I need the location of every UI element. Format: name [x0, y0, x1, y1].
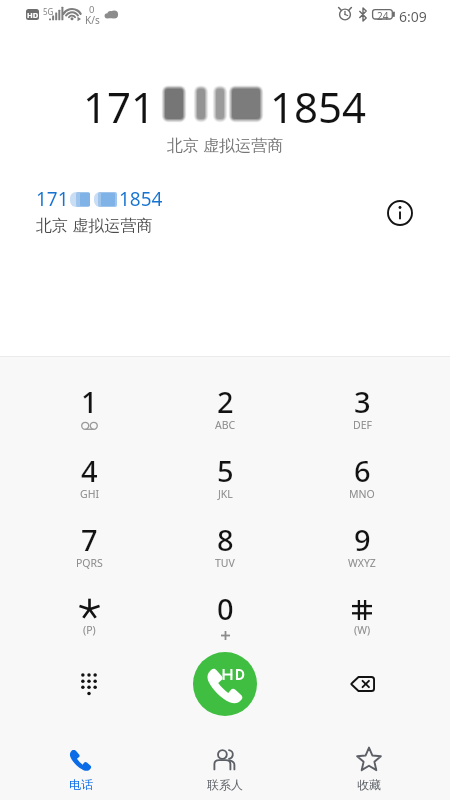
- button[interactable]: Number details: [377, 190, 422, 235]
- button[interactable]: (P): [41, 586, 137, 652]
- staticText: 171: [36, 186, 69, 212]
- staticText: 6: [354, 451, 371, 490]
- staticText: 5G: [43, 6, 54, 17]
- staticText: 7: [81, 520, 98, 559]
- staticText: 9: [354, 520, 371, 559]
- button[interactable]: 6: [314, 448, 410, 514]
- staticText: 1: [81, 382, 98, 421]
- button[interactable]: 收藏: [315, 736, 423, 798]
- staticText: 5: [217, 451, 234, 490]
- staticText: 4: [81, 451, 98, 490]
- staticText: MNO: [349, 487, 375, 501]
- button[interactable]: (W): [314, 586, 410, 652]
- staticText: 1854: [270, 78, 367, 128]
- button[interactable]: Switch keypad: [59, 654, 119, 714]
- staticText: DEF: [353, 418, 372, 432]
- staticText: 1854: [119, 186, 163, 212]
- button[interactable]: 5: [177, 448, 273, 514]
- staticText: (W): [354, 623, 371, 637]
- staticText: ABC: [215, 418, 236, 432]
- button[interactable]: Call: [193, 652, 257, 716]
- button[interactable]: 0: [177, 586, 273, 652]
- staticText: GHI: [80, 487, 99, 501]
- staticText: 0: [217, 589, 234, 628]
- staticText: TUV: [215, 556, 235, 570]
- button[interactable]: 4: [41, 448, 137, 514]
- staticText: HD: [27, 10, 39, 20]
- button[interactable]: Delete: [332, 654, 392, 714]
- button[interactable]: 电话: [27, 736, 135, 798]
- staticText: 3: [354, 382, 371, 421]
- button[interactable]: 1: [41, 379, 137, 445]
- staticText: 北京 虚拟运营商: [0, 134, 450, 156]
- staticText: 电话: [69, 777, 93, 792]
- button[interactable]: 9: [314, 517, 410, 583]
- staticText: 6:09: [399, 7, 427, 26]
- button[interactable]: 8: [177, 517, 273, 583]
- staticText: 2: [217, 382, 234, 421]
- staticText: K/s: [85, 13, 100, 27]
- staticText: JKL: [218, 487, 233, 501]
- button[interactable]: 联系人: [171, 736, 279, 798]
- staticText: 24: [377, 9, 389, 23]
- button[interactable]: 3: [314, 379, 410, 445]
- staticText: (P): [83, 623, 96, 637]
- staticText: 联系人: [207, 777, 243, 792]
- staticText: 171: [83, 78, 156, 128]
- staticText: 0: [89, 3, 95, 16]
- staticText: PQRS: [76, 556, 103, 570]
- button[interactable]: 7: [41, 517, 137, 583]
- staticText: 北京 虚拟运营商: [36, 214, 153, 236]
- staticText: 收藏: [357, 777, 381, 792]
- button[interactable]: 2: [177, 379, 273, 445]
- staticText: 8: [217, 520, 234, 559]
- staticText: WXYZ: [348, 556, 376, 570]
